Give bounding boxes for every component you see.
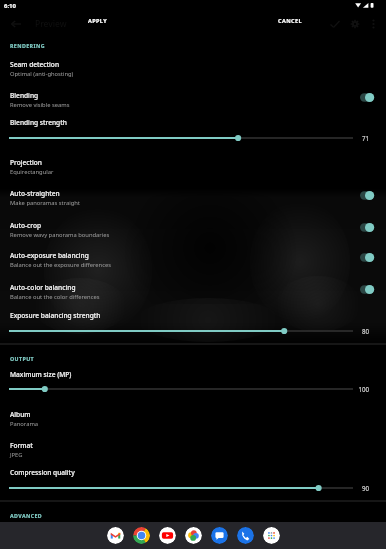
button[interactable]: Seam detection (0, 58, 386, 84)
staticText: Preview (35, 18, 67, 30)
button[interactable]: Toggle Auto-straighten (354, 190, 386, 201)
staticText: Equirectangular (10, 168, 54, 176)
button[interactable]: 90 (0, 481, 386, 495)
button[interactable]: Phone (237, 527, 254, 544)
staticText: Balance out the exposure differences (10, 261, 112, 269)
staticText: Remove wavy panorama boundaries (10, 231, 110, 239)
staticText: Remove visible seams (10, 101, 70, 109)
staticText: Projection (10, 158, 42, 167)
button[interactable]: CANCEL (272, 10, 308, 30)
button[interactable]: All apps (263, 527, 280, 544)
button[interactable]: 100 (0, 382, 386, 396)
staticText: Balance out the color differences (10, 293, 100, 301)
button[interactable]: Blending (0, 89, 386, 115)
staticText: Album (10, 410, 31, 419)
button[interactable]: Toggle Auto-crop (354, 222, 386, 233)
staticText: Blending strength (10, 118, 67, 127)
button[interactable]: Toggle Auto-color balancing (354, 284, 386, 295)
button[interactable]: 80 (0, 324, 386, 338)
staticText: Auto-straighten (10, 189, 60, 198)
staticText: 100 (345, 385, 369, 393)
button[interactable]: Format (0, 439, 386, 465)
button[interactable]: Auto-crop (0, 219, 386, 245)
button[interactable]: Photos (185, 527, 202, 544)
button[interactable]: Album (0, 408, 386, 434)
button[interactable]: 71 (0, 131, 386, 145)
button[interactable]: Auto-straighten (0, 187, 386, 213)
staticText: 6:10 (4, 2, 16, 10)
button[interactable]: YouTube (159, 527, 176, 544)
staticText: Auto-crop (10, 221, 42, 230)
staticText: 90 (345, 484, 369, 492)
staticText: JPEG (10, 451, 23, 459)
button[interactable]: Toggle Auto-exposure balancing (354, 252, 386, 263)
button[interactable]: Settings (345, 14, 365, 34)
button[interactable]: Messages (211, 527, 228, 544)
staticText: Auto-color balancing (10, 283, 76, 292)
staticText: OUTPUT (10, 355, 35, 362)
staticText: Format (10, 441, 33, 450)
staticText: Compression quality (10, 468, 75, 477)
staticText: Panorama (10, 420, 39, 428)
button[interactable]: APPLY (80, 10, 114, 30)
staticText: Blending (10, 91, 39, 100)
button[interactable]: Projection (0, 156, 386, 182)
staticText: Maximum size (MP) (10, 370, 72, 379)
staticText: Seam detection (10, 60, 60, 69)
staticText: ADVANCED (10, 512, 43, 519)
staticText: 71 (345, 134, 369, 142)
button[interactable]: Toggle Blending (354, 92, 386, 103)
staticText: RENDERING (10, 42, 45, 49)
button[interactable]: Auto-exposure balancing (0, 249, 386, 275)
staticText: Make panoramas straight (10, 199, 80, 207)
staticText: Auto-exposure balancing (10, 251, 89, 260)
button[interactable]: Auto-color balancing (0, 281, 386, 307)
staticText: Optimal (anti-ghosting) (10, 70, 74, 78)
staticText: CANCEL (278, 17, 302, 24)
staticText: Exposure balancing strength (10, 311, 101, 320)
button[interactable]: Chrome (133, 527, 150, 544)
button[interactable]: Back (6, 14, 26, 34)
button[interactable]: Gmail (107, 527, 124, 544)
staticText: APPLY (88, 17, 107, 24)
staticText: 80 (345, 327, 369, 335)
